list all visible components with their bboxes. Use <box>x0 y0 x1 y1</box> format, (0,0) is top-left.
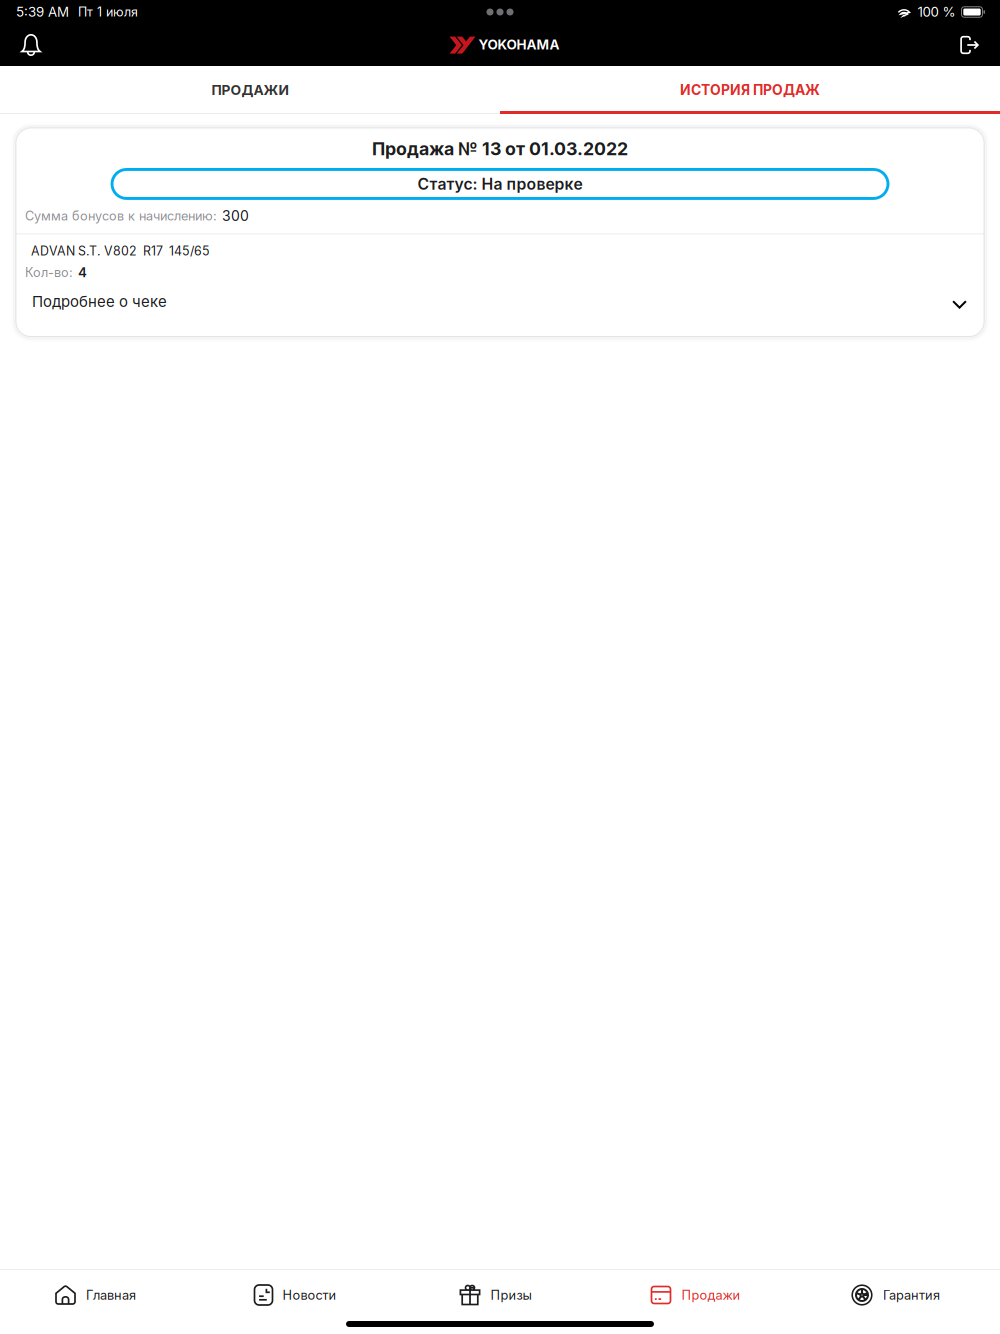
staticText: Новости <box>282 1287 336 1303</box>
staticText: Продажи <box>681 1287 740 1303</box>
staticText: Кол-во: <box>25 265 73 280</box>
button[interactable]: Главная <box>0 1270 200 1320</box>
staticText: ADVAN S.T. V802 R17 145/65 <box>31 243 210 258</box>
staticText: 300 <box>222 207 249 224</box>
staticText: Гарантия <box>883 1287 940 1303</box>
button[interactable]: Призы <box>400 1270 600 1320</box>
button[interactable]: ПРОДАЖИ <box>0 66 500 114</box>
staticText: Подробнее о чеке <box>32 292 167 311</box>
staticText: Продажа № 13 от 01.03.2022 <box>372 138 628 159</box>
staticText: Сумма бонусов к начислению: <box>25 208 217 224</box>
button[interactable]: Продажи <box>600 1270 800 1320</box>
button[interactable]: ИСТОРИЯ ПРОДАЖ <box>500 66 1000 114</box>
staticText: 4 <box>78 264 87 280</box>
staticText: Главная <box>86 1287 136 1303</box>
staticText: ИСТОРИЯ ПРОДАЖ <box>680 82 820 98</box>
staticText: Статус: На проверке <box>417 174 582 193</box>
button[interactable]: Гарантия <box>800 1270 1000 1320</box>
button[interactable]: Выход <box>940 24 998 66</box>
staticText: YOKOHAMA <box>478 36 559 53</box>
button[interactable]: Новости <box>200 1270 400 1320</box>
button[interactable]: Уведомления <box>2 24 60 66</box>
button[interactable]: Подробнее о чеке <box>16 280 984 322</box>
staticText: ПРОДАЖИ <box>211 82 288 98</box>
staticText: 5:39 AM <box>16 4 69 20</box>
staticText: Пт 1 июля <box>78 4 138 20</box>
staticText: 100 % <box>917 4 955 20</box>
staticText: Призы <box>490 1287 531 1303</box>
